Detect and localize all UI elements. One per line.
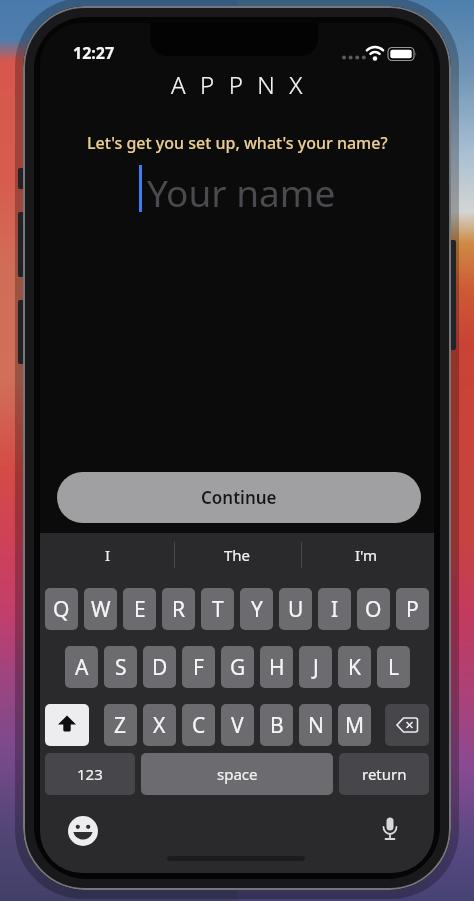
staticText: A [75, 653, 89, 682]
button[interactable]: G [221, 646, 254, 688]
button[interactable]: V [221, 704, 254, 746]
button[interactable]: L [377, 646, 410, 688]
staticText: T [212, 595, 224, 624]
button[interactable]: F [182, 646, 215, 688]
staticText: I'm [355, 545, 378, 565]
button[interactable]: The [174, 538, 301, 572]
staticText: M [345, 711, 365, 740]
button[interactable] [385, 704, 429, 746]
staticText: Q [53, 595, 70, 624]
button[interactable]: W [84, 588, 117, 630]
staticText: S [115, 653, 127, 682]
staticText: K [348, 653, 361, 682]
staticText: L [388, 653, 400, 682]
button[interactable]: S [104, 646, 137, 688]
button[interactable]: Y [240, 588, 273, 630]
button[interactable]: U [279, 588, 312, 630]
button[interactable]: I [42, 538, 174, 572]
button[interactable]: J [299, 646, 332, 688]
button[interactable]: T [201, 588, 234, 630]
button[interactable]: O [357, 588, 390, 630]
staticText: W [91, 595, 111, 624]
staticText: X [153, 711, 166, 740]
staticText: F [193, 653, 204, 682]
button[interactable]: Q [45, 588, 78, 630]
button[interactable]: X [143, 704, 176, 746]
staticText: space [217, 764, 258, 784]
button[interactable]: space [141, 753, 333, 795]
staticText: R [172, 595, 186, 624]
staticText: return [362, 764, 407, 784]
button[interactable]: R [162, 588, 195, 630]
button[interactable] [45, 704, 89, 746]
staticText: G [230, 653, 246, 682]
staticText: J [313, 653, 319, 682]
staticText: B [270, 711, 284, 740]
staticText: Y [251, 595, 263, 624]
staticText: Continue [201, 486, 277, 509]
staticText: O [365, 595, 382, 624]
button[interactable]: Continue [57, 472, 421, 523]
button[interactable]: E [123, 588, 156, 630]
button[interactable]: H [260, 646, 293, 688]
staticText: U [288, 595, 304, 624]
button[interactable]: A [65, 646, 98, 688]
staticText: 123 [77, 764, 103, 784]
staticText: P [406, 595, 419, 624]
staticText: E [134, 595, 146, 624]
staticText: C [192, 711, 206, 740]
button[interactable]: K [338, 646, 371, 688]
button[interactable]: D [143, 646, 176, 688]
staticText: Z [114, 711, 127, 740]
button[interactable]: I'm [301, 538, 432, 572]
staticText: Your name [147, 167, 336, 217]
button[interactable]: N [299, 704, 332, 746]
button[interactable]: Z [104, 704, 137, 746]
staticText: Let's get you set up, what's your name? [87, 132, 388, 154]
staticText: I [105, 545, 111, 565]
staticText: D [152, 653, 168, 682]
staticText: H [269, 653, 285, 682]
button[interactable]: return [339, 753, 429, 795]
button[interactable]: B [260, 704, 293, 746]
button[interactable]: P [396, 588, 429, 630]
staticText: 12:27 [73, 42, 115, 64]
staticText: The [224, 545, 251, 565]
button[interactable]: C [182, 704, 215, 746]
staticText: I [331, 595, 339, 624]
staticText: APPNX [171, 68, 317, 101]
button[interactable]: M [338, 704, 371, 746]
button[interactable]: 123 [45, 753, 135, 795]
staticText: N [308, 711, 324, 740]
staticText: V [231, 711, 244, 740]
button[interactable]: I [318, 588, 351, 630]
